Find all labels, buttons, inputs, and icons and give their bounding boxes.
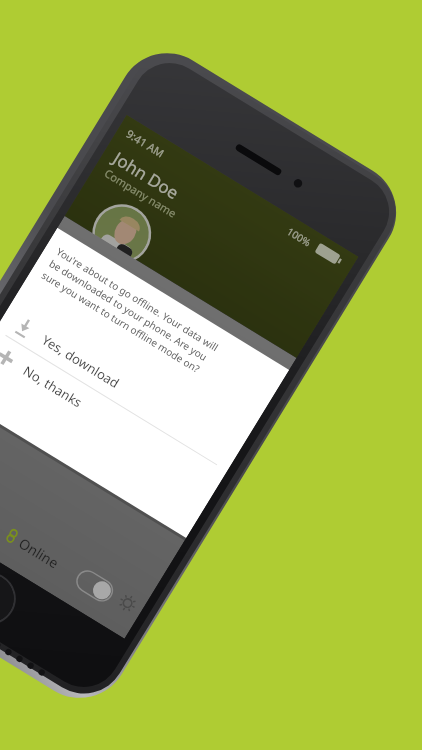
button[interactable]: Offline mode confirmation dialog on phon…: [0, 0, 422, 750]
